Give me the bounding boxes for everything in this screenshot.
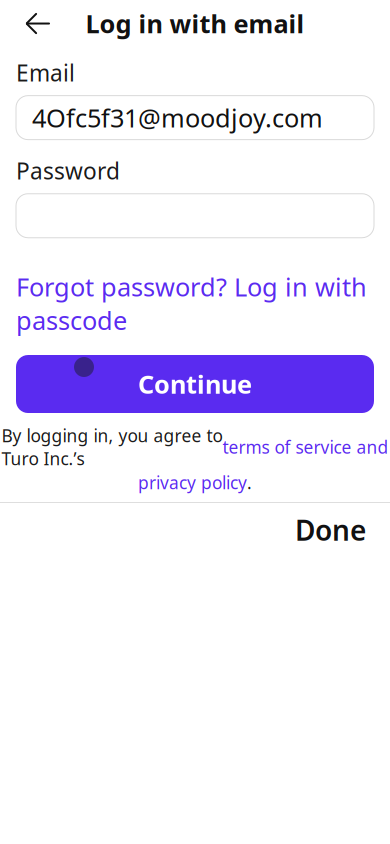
staticText: Done	[295, 511, 366, 548]
button[interactable]: Forgot password? Log in with passcode	[16, 270, 374, 337]
button[interactable]	[16, 194, 374, 238]
staticText: .	[247, 471, 252, 494]
staticText: terms of service and	[222, 435, 388, 458]
staticText: Forgot password? Log in with passcode	[16, 270, 367, 337]
staticText: Continue	[138, 367, 252, 401]
button[interactable]: privacy policy	[138, 471, 247, 494]
button[interactable]: terms of service and	[222, 435, 388, 458]
staticText: privacy policy	[138, 471, 247, 494]
staticText: Password	[16, 156, 120, 186]
button[interactable]: 4Ofc5f31@moodjoy.com	[16, 96, 374, 140]
staticText: Log in with email	[85, 7, 304, 40]
button[interactable]: Back	[16, 1, 60, 45]
staticText: 4Ofc5f31@moodjoy.com	[32, 101, 323, 134]
button[interactable]: Done	[287, 505, 374, 554]
staticText: Email	[16, 57, 75, 88]
button[interactable]: Continue	[16, 355, 374, 413]
staticText: By logging in, you agree to Turo Inc.’s	[1, 424, 222, 470]
